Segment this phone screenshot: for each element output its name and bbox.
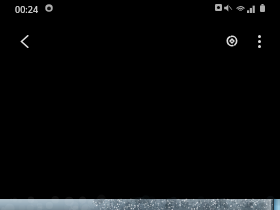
button[interactable]: Back (10, 27, 38, 55)
staticText: 00:24 (15, 3, 39, 15)
button[interactable]: Google Lens (218, 27, 246, 55)
button[interactable]: More options (245, 27, 273, 55)
